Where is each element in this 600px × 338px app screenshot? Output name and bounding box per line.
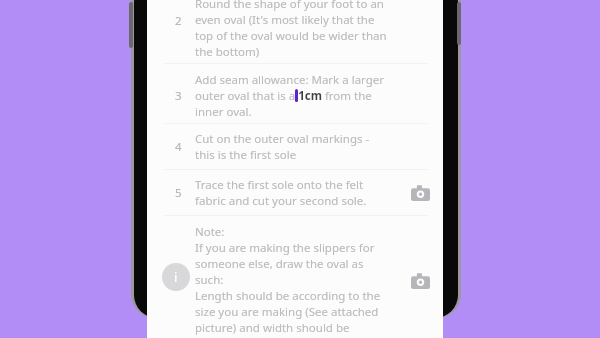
staticText: someone else, draw the oval as — [195, 256, 364, 272]
button[interactable]: Add photo — [409, 270, 431, 292]
staticText: even oval (It's most likely that the — [195, 12, 375, 28]
staticText: size you are making (See attached — [195, 304, 379, 320]
staticText: Cut on the outer oval markings - — [195, 131, 370, 147]
staticText: 3 — [175, 88, 182, 104]
staticText: 4 — [175, 139, 182, 155]
staticText: Add seam allowance: Mark a larger — [195, 72, 385, 88]
button[interactable]: 2 — [147, 0, 443, 60]
button[interactable]: Information — [162, 263, 190, 291]
staticText: this is the first sole — [195, 147, 297, 163]
button[interactable]: 3 — [147, 72, 443, 120]
staticText: fabric and cut your second sole. — [195, 193, 367, 209]
button[interactable]: 5 — [147, 177, 443, 209]
staticText: outer oval that is a 1cm from the — [195, 88, 372, 104]
staticText: Round the shape of your foot to an — [195, 0, 384, 12]
staticText: Trace the first sole onto the felt — [195, 177, 364, 193]
button[interactable]: 4 — [147, 131, 443, 163]
staticText: Length should be according to the — [195, 288, 381, 304]
staticText: inner oval. — [195, 104, 252, 120]
staticText: 5 — [175, 185, 182, 201]
button[interactable]: Note: — [147, 224, 443, 338]
staticText: such: — [195, 272, 224, 288]
staticText: i — [174, 268, 178, 286]
staticText: 2 — [175, 13, 182, 29]
staticText: the bottom) — [195, 44, 260, 60]
staticText: If you are making the slippers for — [195, 240, 375, 256]
staticText: picture) and width should be — [195, 320, 350, 336]
button[interactable]: Add photo — [409, 182, 431, 204]
staticText: Note: — [195, 224, 225, 240]
staticText: top of the oval would be wider than — [195, 28, 387, 44]
